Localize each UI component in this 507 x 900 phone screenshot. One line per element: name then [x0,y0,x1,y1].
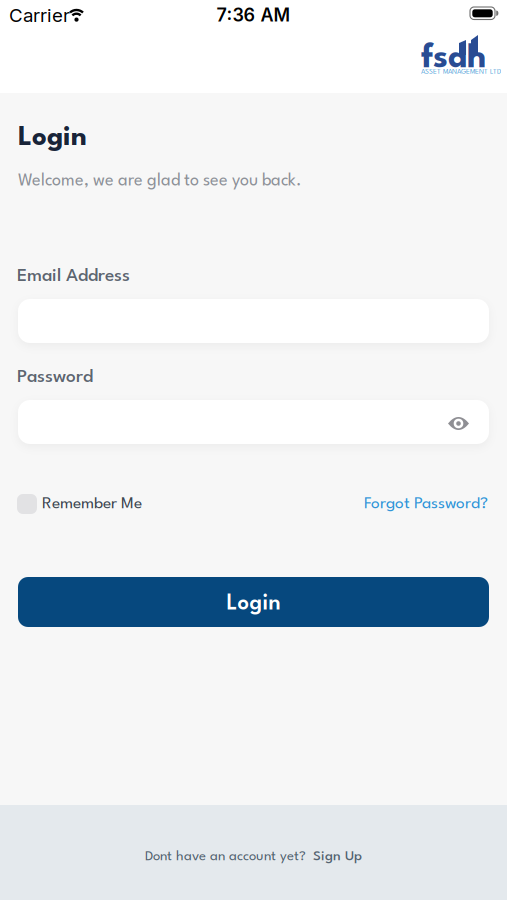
button[interactable]: Show Password [448,416,469,431]
staticText: Sign Up [313,850,362,863]
staticText: 7:36 AM [216,4,290,26]
button[interactable]: Remember Me [17,494,142,514]
staticText: Login [18,125,87,151]
staticText: Login [226,594,280,614]
button[interactable]: Password [18,400,489,444]
staticText: Password [17,368,93,386]
staticText: Remember Me [42,496,142,512]
button[interactable]: Login [18,577,489,627]
staticText: Dont have an account yet? [145,850,306,863]
staticText: Welcome, we are glad to see you back. [18,173,302,190]
staticText: Carrier [9,4,70,27]
staticText: fsdh [421,43,486,75]
staticText: Forgot Password? [364,496,488,512]
staticText: ASSET MANAGEMENT LTD [421,68,501,75]
button[interactable]: Sign Up [313,850,362,863]
staticText: Email Address [17,267,130,285]
button[interactable]: Forgot Password? [364,496,488,512]
